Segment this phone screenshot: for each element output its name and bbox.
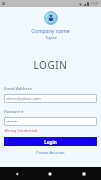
button[interactable]: Back — [0, 167, 33, 180]
staticText: Tagline — [45, 35, 57, 40]
staticText: demo@yahoo.com — [6, 96, 41, 101]
staticText: Password — [4, 109, 23, 115]
button[interactable]: Home — [33, 167, 67, 180]
button[interactable]: demo@yahoo.com — [4, 94, 97, 103]
staticText: Create Account — [36, 150, 65, 155]
staticText: 11:91 — [90, 2, 99, 6]
button[interactable]: Create Account — [4, 150, 97, 155]
button[interactable]: •••••••• — [4, 117, 97, 126]
staticText: •••••••• — [6, 119, 18, 124]
staticText: Login — [44, 139, 57, 145]
staticText: Company name — [31, 27, 70, 34]
staticText: Wrong Credentials — [4, 128, 38, 133]
staticText: Email Address — [4, 86, 32, 92]
button[interactable]: Recent apps — [67, 167, 101, 180]
staticText: LOGIN — [33, 58, 68, 72]
button[interactable]: Login — [4, 137, 97, 146]
